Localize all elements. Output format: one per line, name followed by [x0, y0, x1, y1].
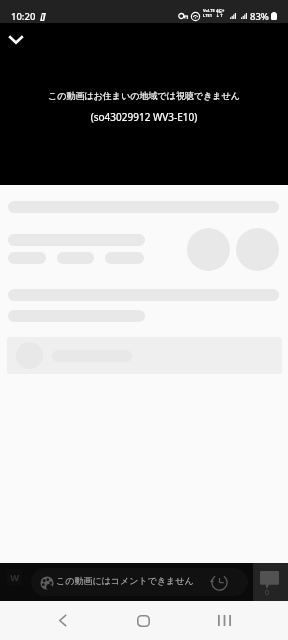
staticText: 4G+ [216, 8, 225, 14]
staticText: 10:20 [11, 10, 36, 23]
staticText: この動画にはコメントできません [56, 575, 194, 586]
staticText: 0 [265, 588, 270, 598]
staticText: LTE1 [203, 13, 212, 18]
button[interactable]: Recent apps [202, 601, 246, 640]
button[interactable]: Home [121, 601, 165, 640]
button[interactable]: Collapse [2, 25, 30, 53]
button[interactable]: Comments [253, 563, 288, 601]
staticText: この動画はお住まいの地域では視聴できません [0, 90, 288, 101]
staticText: 83% [250, 10, 269, 23]
staticText: (so43029912 WV3-E10) [0, 110, 288, 124]
button[interactable]: この動画にはコメントできません [31, 568, 248, 596]
staticText: VoLTE [203, 8, 215, 13]
button[interactable]: Account [7, 569, 22, 585]
staticText: ↓↑ [216, 13, 224, 18]
button[interactable]: Back [41, 601, 85, 640]
staticText: W [10, 571, 20, 583]
button[interactable]: History [209, 572, 229, 592]
